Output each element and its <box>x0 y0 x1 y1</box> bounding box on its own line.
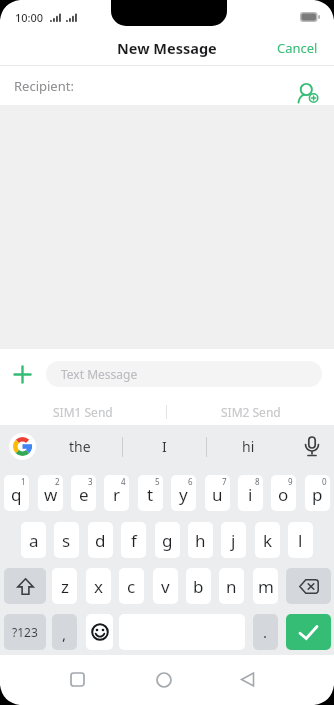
staticText: Text Message <box>61 366 138 382</box>
staticText: d <box>95 529 106 552</box>
staticText: Cancel <box>277 39 318 57</box>
staticText: p <box>312 483 323 506</box>
button[interactable]: r <box>104 475 129 511</box>
staticText: New Message <box>117 38 217 58</box>
button[interactable]: SIM1 Send <box>0 399 166 425</box>
button[interactable]: t <box>138 475 163 511</box>
staticText: , <box>62 624 67 644</box>
button[interactable]: h <box>188 522 213 558</box>
staticText: x <box>94 575 103 598</box>
staticText: 9 <box>288 476 293 487</box>
button[interactable]: SIM2 Send <box>167 399 334 425</box>
staticText: z <box>61 575 69 598</box>
button[interactable]: i <box>238 475 263 511</box>
staticText: hi <box>242 437 255 456</box>
staticText: 4 <box>121 476 126 487</box>
staticText: k <box>263 529 273 552</box>
staticText: SIM2 Send <box>221 404 281 420</box>
button[interactable]: the <box>38 425 122 468</box>
staticText: u <box>212 483 223 506</box>
staticText: e <box>79 483 89 506</box>
button[interactable]: c <box>119 568 144 604</box>
staticText: 2 <box>55 476 60 487</box>
button[interactable]: l <box>288 522 313 558</box>
staticText: a <box>29 529 39 552</box>
staticText: y <box>179 483 188 506</box>
staticText: v <box>161 575 170 598</box>
button[interactable]: I <box>123 425 206 468</box>
staticText: 5 <box>155 476 160 487</box>
button[interactable] <box>290 425 334 468</box>
button[interactable]: g <box>155 522 180 558</box>
button[interactable]: o <box>271 475 296 511</box>
button[interactable]: w <box>38 475 63 511</box>
button[interactable]: s <box>54 522 79 558</box>
staticText: h <box>195 529 206 552</box>
button[interactable]: b <box>186 568 211 604</box>
button[interactable]: , <box>52 614 77 650</box>
button[interactable]: d <box>88 522 113 558</box>
button[interactable]: Cancel <box>277 39 318 57</box>
button[interactable]: z <box>52 568 77 604</box>
staticText: 8 <box>255 476 260 487</box>
button[interactable] <box>286 568 331 604</box>
button[interactable]: hi <box>207 425 290 468</box>
button[interactable]: j <box>221 522 246 558</box>
staticText: 1 <box>21 476 26 487</box>
staticText: I <box>162 437 167 456</box>
button[interactable] <box>156 672 172 688</box>
staticText: m <box>258 575 274 598</box>
button[interactable]: x <box>86 568 111 604</box>
staticText: g <box>162 529 173 552</box>
staticText: q <box>11 483 22 506</box>
button[interactable]: y <box>171 475 196 511</box>
staticText: j <box>231 529 236 552</box>
staticText: . <box>263 622 268 642</box>
button[interactable]: Text Message <box>46 361 322 387</box>
button[interactable]: k <box>255 522 280 558</box>
button[interactable] <box>286 614 331 650</box>
staticText: i <box>248 483 253 506</box>
button[interactable] <box>294 75 322 103</box>
button[interactable]: v <box>153 568 178 604</box>
button[interactable] <box>70 672 85 687</box>
button[interactable]: p <box>305 475 330 511</box>
button[interactable]: a <box>21 522 46 558</box>
staticText: Recipient: <box>14 77 74 95</box>
staticText: w <box>44 483 58 506</box>
staticText: SIM1 Send <box>53 404 113 420</box>
button[interactable] <box>86 614 113 650</box>
button[interactable]: m <box>253 568 278 604</box>
button[interactable] <box>0 425 38 468</box>
staticText: 3 <box>88 476 93 487</box>
staticText: f <box>131 529 137 552</box>
staticText: t <box>147 483 154 506</box>
staticText: the <box>69 437 91 456</box>
staticText: 7 <box>222 476 227 487</box>
staticText: s <box>62 529 71 552</box>
button[interactable] <box>240 672 255 687</box>
staticText: 0 <box>322 476 327 487</box>
button[interactable]: Recipient: <box>0 66 334 105</box>
button[interactable]: ?123 <box>4 614 46 650</box>
staticText: 10:00 <box>15 10 44 25</box>
button[interactable]: e <box>71 475 96 511</box>
button[interactable] <box>14 366 31 383</box>
staticText: 6 <box>188 476 193 487</box>
button[interactable]: . <box>253 614 278 650</box>
staticText: ?123 <box>12 624 38 640</box>
button[interactable]: u <box>205 475 230 511</box>
staticText: c <box>127 575 136 598</box>
staticText: b <box>193 575 204 598</box>
button[interactable] <box>4 568 46 604</box>
staticText: o <box>278 483 289 506</box>
staticText: l <box>298 529 303 552</box>
button[interactable]: q <box>4 475 29 511</box>
button[interactable]: n <box>219 568 244 604</box>
staticText: r <box>113 483 121 506</box>
staticText: n <box>226 575 237 598</box>
button[interactable]: f <box>121 522 146 558</box>
